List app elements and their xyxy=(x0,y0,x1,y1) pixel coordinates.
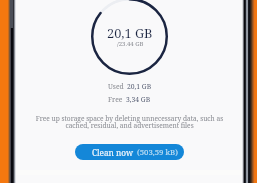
staticText: Free xyxy=(108,95,123,104)
staticText: 3,34 GB xyxy=(126,95,151,104)
staticText: Used xyxy=(108,82,124,91)
staticText: 20,1 GB xyxy=(107,24,153,41)
staticText: 20,1 GB xyxy=(127,82,152,91)
staticText: /23.44 GB xyxy=(117,40,144,48)
button[interactable]: Clean now xyxy=(75,144,184,160)
staticText: (503,59 kB) xyxy=(137,147,178,158)
staticText: Free up storage space by deleting unnece… xyxy=(32,114,227,130)
staticText: Clean now xyxy=(92,147,134,158)
